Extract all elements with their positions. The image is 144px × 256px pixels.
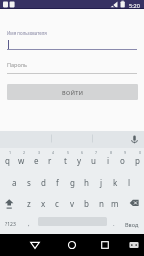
button[interactable]: l (122, 170, 136, 192)
staticText: 5:20 (129, 2, 140, 9)
staticText: 9 (124, 150, 127, 155)
button[interactable]: Switch keyboard (124, 234, 144, 256)
staticText: k (113, 177, 118, 188)
button[interactable]: 5 (58, 148, 72, 170)
button[interactable]: Backspace (127, 191, 141, 213)
staticText: g (70, 177, 75, 188)
button[interactable]: 9 (115, 148, 129, 170)
staticText: 7 (95, 150, 98, 155)
staticText: 6 (81, 150, 84, 155)
staticText: ?123 (5, 221, 16, 228)
button[interactable]: f (50, 170, 64, 192)
button[interactable]: s (22, 170, 36, 192)
staticText: x (41, 198, 46, 209)
staticText: n (99, 198, 104, 209)
button[interactable]: h (79, 170, 93, 192)
button[interactable]: , (22, 213, 36, 235)
staticText: Ввод (125, 221, 139, 228)
staticText: 8 (110, 150, 113, 155)
button[interactable]: z (22, 191, 36, 213)
staticText: 2 (23, 150, 26, 155)
staticText: v (70, 198, 75, 209)
staticText: s (27, 177, 31, 188)
button[interactable]: b (79, 191, 93, 213)
staticText: 5 (67, 150, 70, 155)
button[interactable]: k (108, 170, 122, 192)
button[interactable]: 4 (43, 148, 57, 170)
button[interactable]: ВОЙТИ (7, 84, 138, 100)
button[interactable]: c (50, 191, 64, 213)
staticText: Пароль (7, 61, 27, 68)
staticText: i (107, 155, 110, 166)
staticText: b (84, 198, 89, 209)
button[interactable]: 8 (101, 148, 115, 170)
staticText: r (48, 155, 52, 166)
button[interactable]: m (108, 191, 122, 213)
staticText: t (64, 155, 67, 166)
button[interactable]: Home (62, 234, 82, 256)
staticText: q (5, 155, 10, 166)
button[interactable]: 6 (72, 148, 86, 170)
staticText: w (18, 155, 25, 166)
button[interactable]: ?123 (0, 213, 20, 235)
button[interactable]: j (94, 170, 108, 192)
staticText: ВОЙТИ (62, 89, 84, 96)
staticText: c (55, 198, 59, 209)
staticText: , (28, 220, 30, 228)
button[interactable]: v (65, 191, 79, 213)
staticText: j (100, 177, 103, 188)
button[interactable]: 1 (0, 148, 14, 170)
staticText: a (12, 177, 17, 188)
button[interactable]: Voice input (127, 131, 142, 148)
button[interactable]: 7 (86, 148, 100, 170)
button[interactable]: Ввод (120, 213, 144, 235)
staticText: m (111, 198, 119, 209)
button[interactable]: Recent apps (95, 234, 115, 256)
staticText: l (128, 177, 131, 188)
staticText: Имя пользователя (7, 30, 47, 36)
button[interactable]: x (36, 191, 50, 213)
staticText: u (91, 155, 96, 166)
staticText: 0 (139, 150, 142, 155)
staticText: o (120, 155, 125, 166)
button[interactable]: d (36, 170, 50, 192)
staticText: f (56, 177, 59, 188)
button[interactable]: 2 (14, 148, 28, 170)
staticText: y (77, 155, 82, 166)
staticText: 3 (38, 150, 41, 155)
staticText: z (27, 198, 31, 209)
staticText: . (113, 220, 115, 228)
button[interactable]: 0 (130, 148, 144, 170)
button[interactable]: g (65, 170, 79, 192)
button[interactable]: Hide keyboard (25, 234, 45, 256)
button[interactable]: . (107, 213, 120, 235)
button[interactable]: Shift (2, 191, 16, 213)
button[interactable]: a (7, 170, 21, 192)
staticText: d (41, 177, 46, 188)
staticText: p (135, 155, 140, 166)
button[interactable]: 3 (29, 148, 43, 170)
staticText: h (84, 177, 89, 188)
staticText: 1 (9, 150, 12, 155)
staticText: 4 (52, 150, 55, 155)
staticText: e (34, 155, 39, 166)
button[interactable]: n (94, 191, 108, 213)
